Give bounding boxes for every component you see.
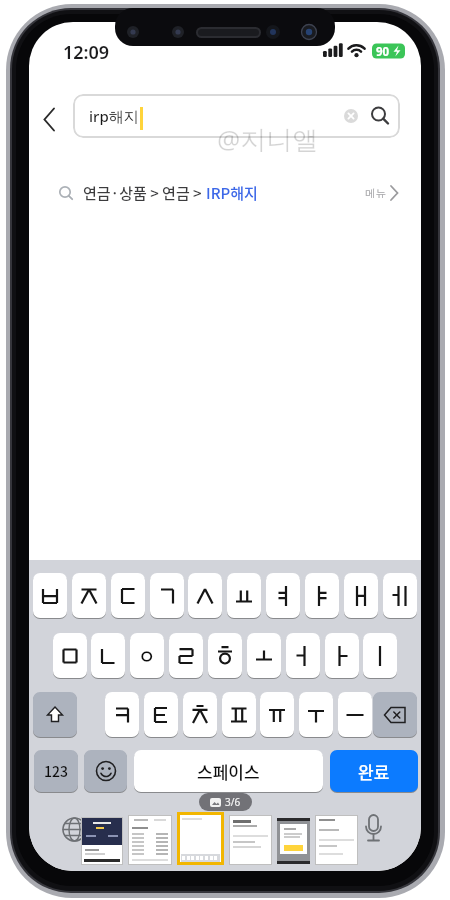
button[interactable] bbox=[53, 633, 87, 678]
button[interactable] bbox=[344, 573, 378, 618]
button[interactable] bbox=[169, 633, 203, 678]
button[interactable] bbox=[188, 573, 222, 618]
staticText: @지니앨 bbox=[217, 121, 319, 157]
staticText: IRP해지 bbox=[206, 182, 258, 204]
staticText: 메뉴 bbox=[365, 187, 386, 200]
button[interactable] bbox=[208, 633, 242, 678]
button[interactable]: 완료 bbox=[330, 750, 418, 792]
button[interactable] bbox=[247, 633, 281, 678]
button[interactable] bbox=[84, 750, 127, 792]
staticText: 90 bbox=[376, 44, 390, 60]
button[interactable] bbox=[105, 692, 139, 737]
staticText: irp해지 bbox=[89, 106, 139, 126]
button[interactable] bbox=[72, 573, 106, 618]
staticText: 연금·상품 > 연금 > bbox=[83, 182, 206, 204]
button[interactable] bbox=[260, 692, 294, 737]
button[interactable] bbox=[222, 692, 256, 737]
staticText: 3/6 bbox=[225, 795, 241, 809]
staticText: 12:09 bbox=[63, 40, 110, 65]
staticText: ㅇ bbox=[138, 642, 156, 670]
staticText: 완료 bbox=[358, 759, 390, 784]
button[interactable] bbox=[338, 692, 372, 737]
button[interactable] bbox=[183, 692, 217, 737]
button[interactable] bbox=[33, 692, 77, 737]
button[interactable] bbox=[286, 633, 320, 678]
button[interactable] bbox=[91, 633, 125, 678]
button[interactable] bbox=[144, 692, 178, 737]
button[interactable]: 123 bbox=[34, 750, 78, 792]
button[interactable]: 연금·상품 > 연금 > bbox=[49, 173, 409, 213]
staticText: 123 bbox=[44, 761, 68, 781]
button[interactable]: ㅇ bbox=[130, 633, 164, 678]
button[interactable]: 스페이스 bbox=[134, 750, 323, 792]
button[interactable] bbox=[150, 573, 184, 618]
button[interactable] bbox=[373, 692, 417, 737]
button[interactable] bbox=[33, 573, 67, 618]
staticText: 스페이스 bbox=[197, 759, 260, 784]
button[interactable] bbox=[363, 633, 397, 678]
button[interactable]: irp해지 bbox=[73, 94, 400, 138]
button[interactable] bbox=[111, 573, 145, 618]
button[interactable] bbox=[299, 692, 333, 737]
button[interactable] bbox=[325, 633, 359, 678]
button[interactable] bbox=[383, 573, 417, 618]
button[interactable] bbox=[227, 573, 261, 618]
button[interactable] bbox=[266, 573, 300, 618]
button[interactable] bbox=[305, 573, 339, 618]
